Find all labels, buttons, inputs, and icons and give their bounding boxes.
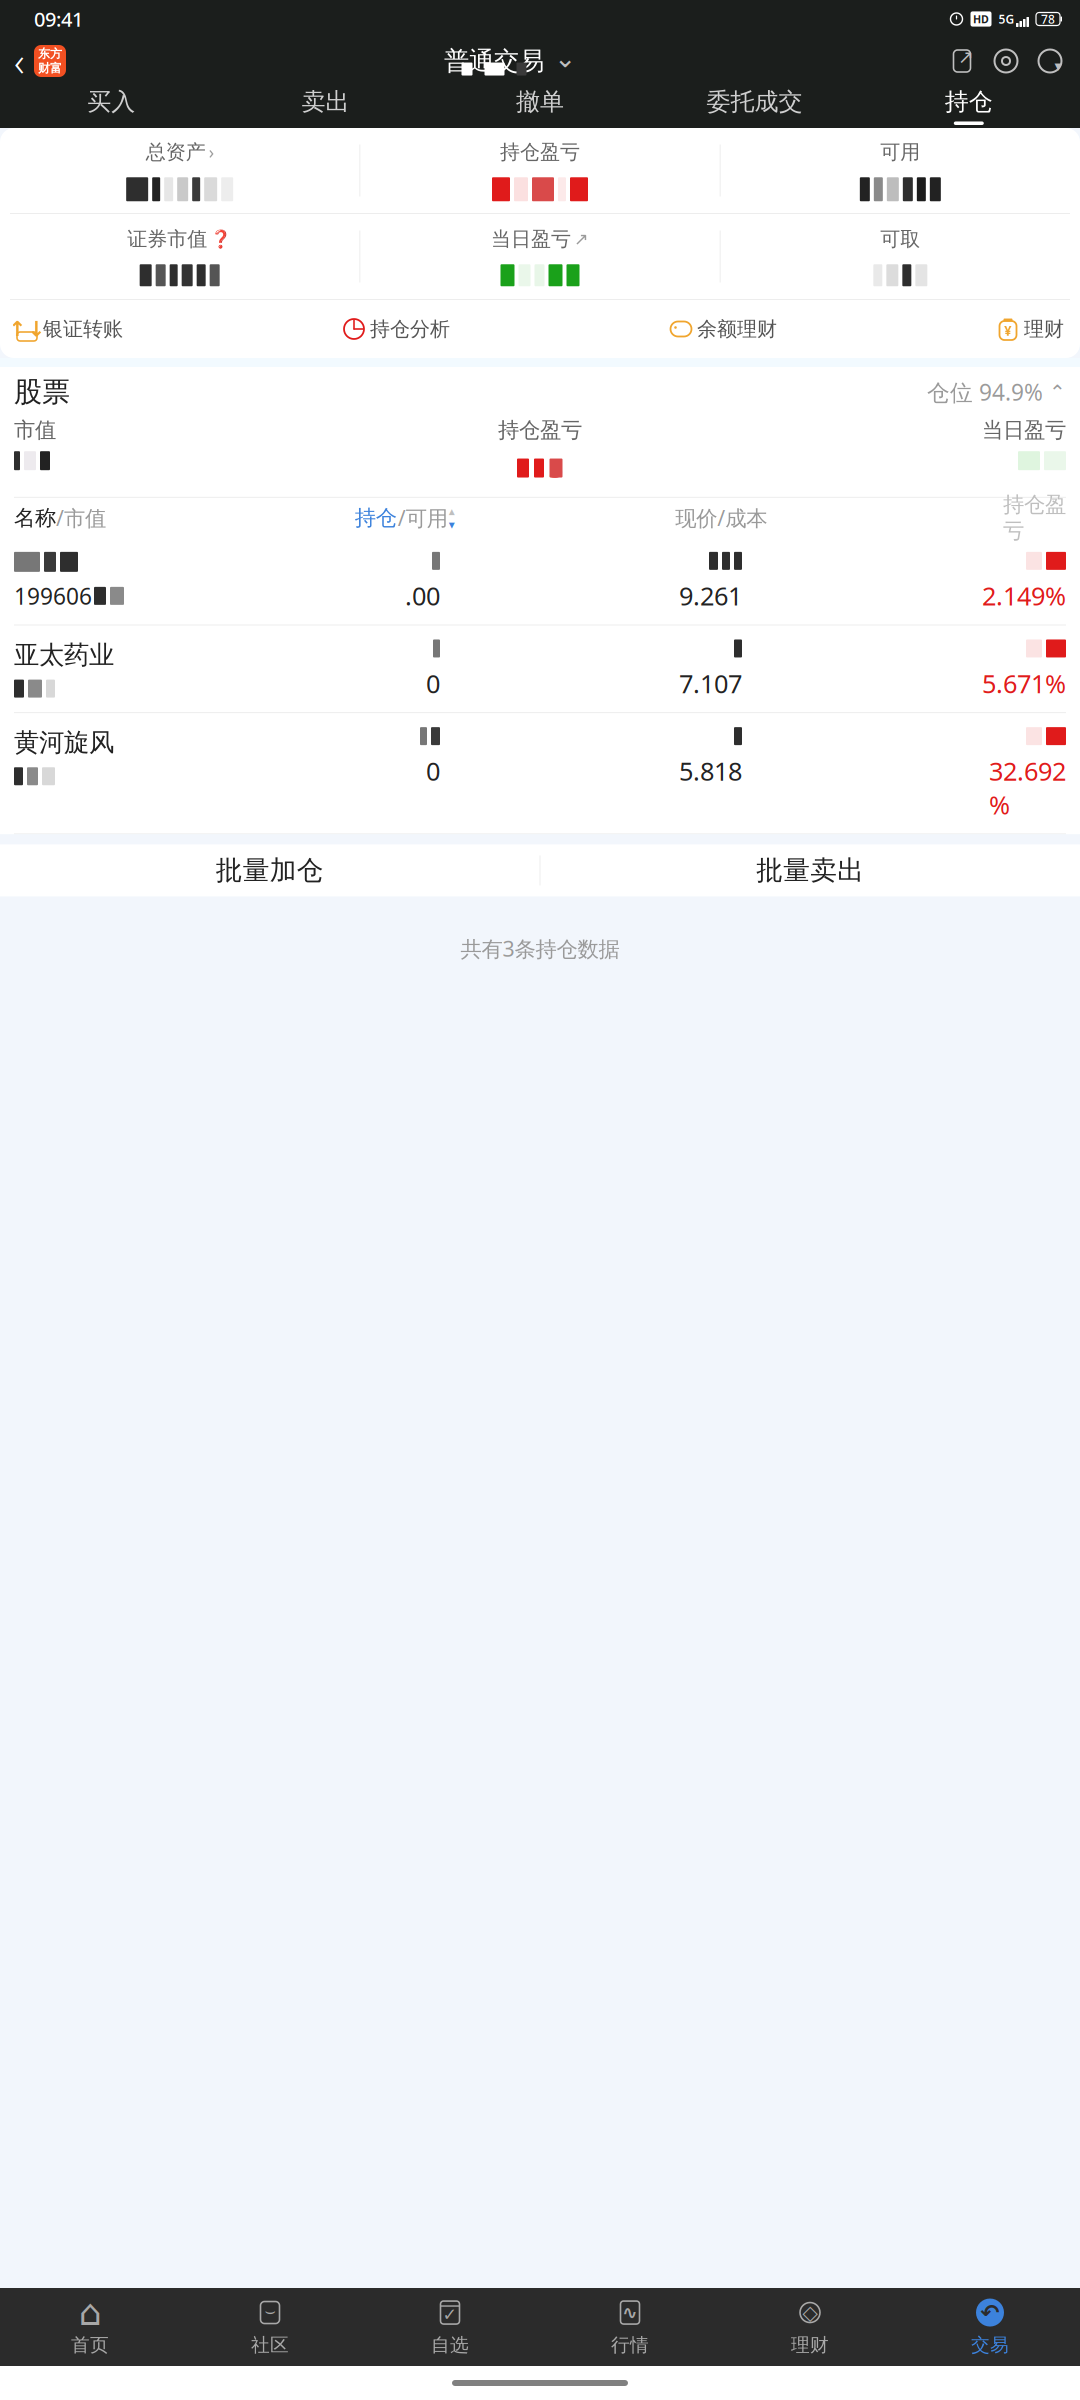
- staticText: ‹: [14, 34, 25, 87]
- staticText: 持仓: [355, 505, 397, 531]
- staticText: 持仓分析: [370, 317, 450, 341]
- staticText: ↓: [27, 317, 45, 341]
- staticText: 仓位 94.9%: [927, 377, 1043, 407]
- staticText: ▾: [449, 518, 455, 531]
- staticText: 0: [426, 666, 440, 700]
- staticText: 7.107: [679, 666, 742, 700]
- staticText: ↶: [980, 2300, 999, 2325]
- button[interactable]: 分享: [948, 46, 976, 76]
- staticText: .00: [405, 579, 440, 612]
- staticText: ⌣: [264, 2303, 275, 2320]
- staticText: 市值: [14, 417, 56, 443]
- button[interactable]: ↶: [900, 2288, 1080, 2366]
- button[interactable]: 持仓: [862, 85, 1076, 127]
- staticText: /可用: [398, 504, 448, 532]
- button[interactable]: 批量加仓: [0, 844, 539, 896]
- staticText: 9.261: [679, 579, 742, 612]
- button[interactable]: 持仓: [355, 501, 455, 535]
- staticText: 2.149%: [982, 579, 1066, 612]
- staticText: 行情: [611, 2333, 649, 2356]
- staticText: 现价/成本: [675, 504, 767, 532]
- staticText: 共有3条持仓数据: [460, 934, 619, 963]
- staticText: 买入: [87, 87, 135, 116]
- staticText: 当日盈亏: [982, 417, 1066, 443]
- staticText: 0: [426, 754, 440, 788]
- staticText: 理财: [1024, 317, 1064, 341]
- staticText: 当日盈亏: [491, 227, 571, 251]
- button[interactable]: 设置: [992, 46, 1020, 76]
- staticText: ▾: [1054, 58, 1061, 74]
- button[interactable]: ◇: [720, 2288, 900, 2366]
- staticText: 5G: [998, 11, 1014, 27]
- staticText: 银证转账: [43, 317, 123, 341]
- button[interactable]: ✓: [360, 2288, 540, 2366]
- staticText: 证券市值: [127, 227, 207, 251]
- staticText: ⌄: [554, 43, 576, 73]
- staticText: 5.671%: [982, 666, 1066, 700]
- staticText: 黄河旋风: [14, 727, 114, 758]
- button[interactable]: ¥: [997, 307, 1064, 351]
- button[interactable]: ⌂: [0, 2288, 180, 2366]
- staticText: 亚太药业: [14, 639, 114, 671]
- staticText: 总资产: [146, 140, 206, 164]
- button[interactable]: ∿: [540, 2288, 720, 2366]
- staticText: 持仓盈亏: [498, 417, 582, 443]
- staticText: 批量加仓: [216, 854, 324, 887]
- button[interactable]: 撤单: [433, 85, 647, 127]
- staticText: 自选: [431, 2333, 469, 2356]
- button[interactable]: 普通交易: [444, 38, 576, 84]
- staticText: ↑: [8, 317, 26, 341]
- staticText: 交易: [971, 2333, 1009, 2356]
- staticText: 批量卖出: [756, 854, 864, 887]
- staticText: ↗: [574, 229, 589, 249]
- staticText: ✓: [442, 2305, 457, 2324]
- staticText: 卖出: [302, 87, 350, 116]
- staticText: 78: [1041, 11, 1055, 27]
- button[interactable]: 199606: [0, 538, 1080, 625]
- staticText: ›: [209, 140, 214, 163]
- button[interactable]: ⌣: [180, 2288, 360, 2366]
- staticText: HD: [973, 12, 989, 26]
- button[interactable]: 亚太药业: [0, 625, 1080, 713]
- staticText: ∿: [622, 2302, 638, 2323]
- staticText: 3: [549, 451, 563, 485]
- button[interactable]: 持仓分析: [343, 307, 450, 351]
- staticText: ⌃: [1049, 381, 1066, 403]
- staticText: ❓: [210, 229, 232, 249]
- staticText: 社区: [251, 2333, 289, 2356]
- staticText: ▴: [449, 504, 455, 518]
- button[interactable]: 刷新: [1036, 46, 1064, 76]
- staticText: 东方: [38, 46, 62, 61]
- staticText: 持仓盈亏: [1003, 492, 1066, 544]
- staticText: 余额理财: [697, 317, 777, 341]
- staticText: ◇: [802, 2301, 817, 2324]
- staticText: 财富: [38, 61, 62, 76]
- staticText: 股票: [14, 375, 70, 409]
- button[interactable]: 仓位 94.9%: [927, 375, 1066, 409]
- staticText: 委托成交: [706, 87, 802, 116]
- staticText: 持仓: [945, 87, 993, 116]
- staticText: 持仓盈亏: [500, 140, 580, 164]
- button[interactable]: 卖出: [218, 85, 433, 127]
- button[interactable]: 批量卖出: [540, 844, 1080, 896]
- staticText: 首页: [71, 2333, 109, 2356]
- button[interactable]: 委托成交: [647, 85, 862, 127]
- staticText: ↗: [958, 46, 974, 68]
- staticText: 可取: [880, 227, 920, 251]
- button[interactable]: 买入: [4, 85, 218, 127]
- staticText: 名称: [14, 505, 56, 531]
- staticText: ⌂: [78, 2292, 101, 2333]
- staticText: /市值: [56, 504, 106, 532]
- staticText: 199606: [14, 581, 92, 611]
- button[interactable]: 返回: [0, 38, 72, 84]
- button[interactable]: 黄河旋风: [0, 713, 1080, 834]
- staticText: 32.692%: [989, 754, 1066, 821]
- button[interactable]: ↑: [16, 307, 123, 351]
- staticText: 撤单: [516, 87, 564, 116]
- staticText: 5.818: [679, 754, 742, 788]
- staticText: 理财: [791, 2333, 829, 2356]
- staticText: 普通交易: [444, 45, 544, 76]
- button[interactable]: 余额理财: [670, 307, 777, 351]
- staticText: 09:41: [34, 6, 83, 32]
- staticText: ¥: [1004, 322, 1012, 339]
